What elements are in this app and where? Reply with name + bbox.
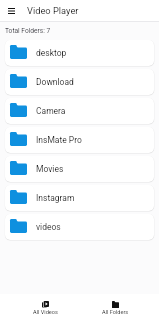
button[interactable]: All Folders [97, 301, 133, 320]
staticText: videos [36, 222, 61, 232]
button[interactable]: Movies [5, 156, 154, 182]
staticText: Movies [36, 164, 64, 174]
button[interactable]: InsMate Pro [5, 127, 154, 153]
staticText: Camera [36, 106, 66, 116]
button[interactable]: desktop [5, 40, 154, 66]
button[interactable]: videos [5, 214, 154, 240]
button[interactable]: Menu [5, 4, 18, 17]
staticText: desktop [36, 48, 67, 58]
button[interactable]: Camera [5, 98, 154, 124]
button[interactable]: Download [5, 69, 154, 95]
staticText: All Videos [33, 309, 58, 316]
staticText: Download [36, 77, 74, 87]
staticText: Video Player [27, 5, 79, 16]
button[interactable]: All Videos [27, 301, 63, 320]
staticText: Total Folders: 7 [5, 27, 51, 35]
staticText: Instagram [36, 193, 75, 203]
staticText: InsMate Pro [36, 135, 82, 145]
staticText: All Folders [102, 309, 129, 316]
button[interactable]: Instagram [5, 185, 154, 211]
